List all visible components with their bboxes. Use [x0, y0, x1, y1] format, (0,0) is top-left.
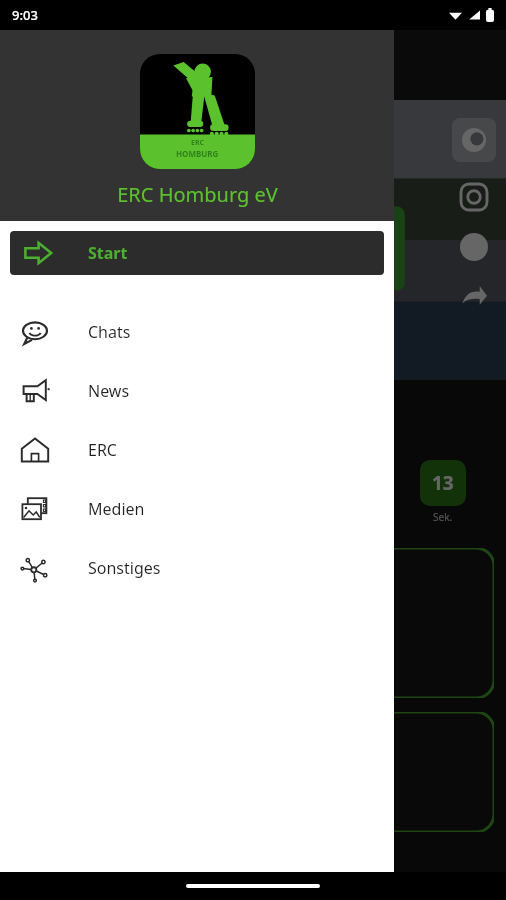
staticText: Sek.	[433, 510, 453, 524]
staticText: ERC Homburg eV	[117, 181, 278, 208]
staticText: 9:03	[12, 6, 38, 24]
staticText: News	[88, 380, 130, 402]
button[interactable]: News	[0, 361, 394, 420]
button[interactable]: Medien	[0, 479, 394, 538]
staticText: ERC	[88, 439, 117, 461]
button[interactable]: Facebook	[459, 232, 489, 262]
staticText: Chats	[88, 321, 131, 343]
staticText: ERC	[191, 138, 205, 148]
button[interactable]: ERC	[0, 420, 394, 479]
staticText: Sonstiges	[88, 557, 161, 579]
button[interactable]: Sonstiges	[0, 538, 394, 597]
button[interactable]: Chats	[0, 302, 394, 361]
staticText: 13	[432, 470, 454, 496]
button[interactable]: Instagram	[459, 182, 489, 212]
staticText: Start	[88, 242, 128, 264]
button[interactable]	[12, 712, 494, 832]
button[interactable]: Training	[12, 548, 494, 698]
staticText: HOMBURG	[176, 148, 219, 159]
other: Start	[23, 238, 53, 268]
staticText: Medien	[88, 498, 145, 520]
button[interactable]: Website	[452, 118, 496, 162]
button[interactable]: Share	[459, 282, 489, 312]
button[interactable]: Start	[10, 231, 384, 275]
